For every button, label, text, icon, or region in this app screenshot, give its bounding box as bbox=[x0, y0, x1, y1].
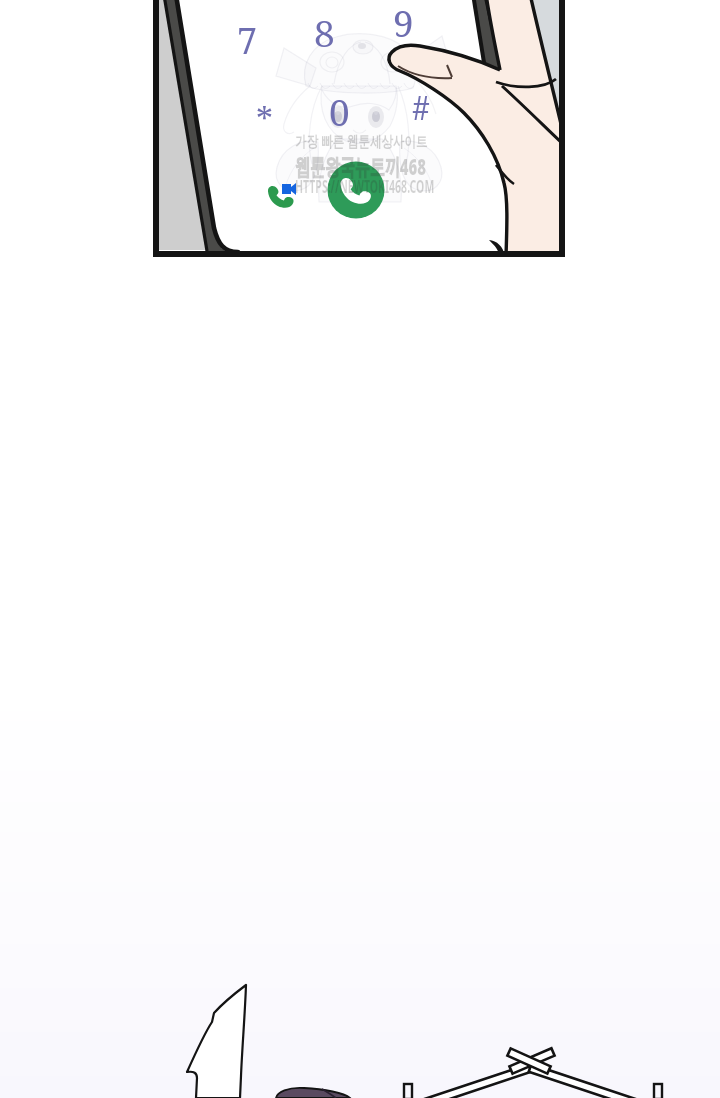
staticText: HTTPS://NEWTOKI468.COM bbox=[295, 174, 435, 198]
staticText: 8 bbox=[314, 7, 335, 57]
staticText: 웹툰왕국뉴토끼468 bbox=[295, 150, 426, 181]
staticText: 9 bbox=[393, 0, 414, 47]
staticText: * bbox=[256, 96, 273, 142]
staticText: 가장 빠른 웹툰세상사이트 bbox=[295, 130, 427, 151]
staticText: # bbox=[412, 86, 430, 130]
button[interactable]: 7 bbox=[0, 0, 720, 1098]
staticText: 0 bbox=[329, 86, 350, 136]
staticText: 7 bbox=[237, 16, 258, 65]
